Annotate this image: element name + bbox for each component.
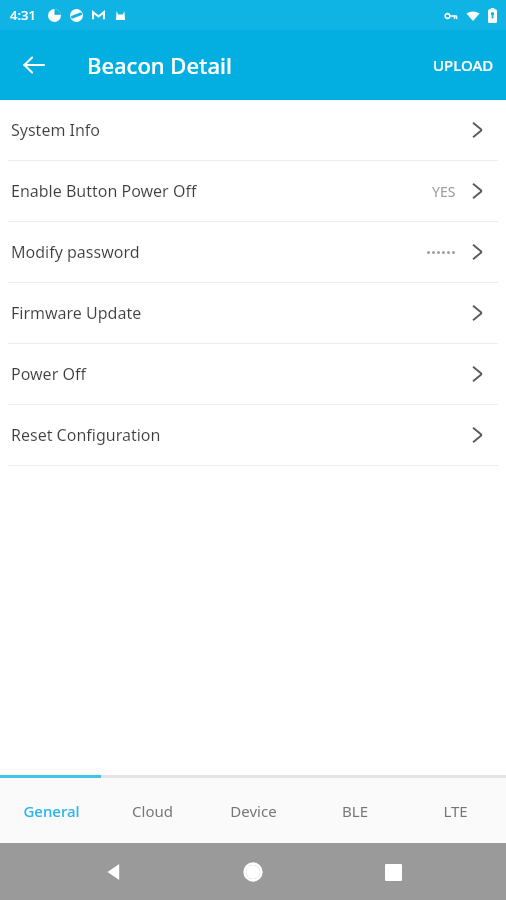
staticText: Enable Button Power Off	[11, 180, 197, 202]
staticText: YES	[432, 182, 456, 201]
staticText: Reset Configuration	[11, 424, 161, 446]
button[interactable]: Reset Configuration	[0, 405, 506, 465]
staticText: 4:31	[10, 6, 36, 24]
staticText: System Info	[11, 119, 101, 141]
button[interactable]: Device	[203, 778, 304, 843]
button[interactable]: Firmware Update	[0, 283, 506, 343]
button[interactable]: System Info	[0, 100, 506, 160]
staticText: Power Off	[11, 363, 86, 385]
button[interactable]: UPLOAD	[421, 45, 506, 85]
button[interactable]: BLE	[304, 778, 405, 843]
staticText: Cloud	[132, 801, 173, 821]
button[interactable]: LTE	[405, 778, 506, 843]
staticText: BLE	[342, 801, 368, 821]
button[interactable]: Recent apps	[366, 845, 420, 899]
staticText: Beacon Detail	[87, 50, 232, 80]
button[interactable]: General	[0, 778, 102, 843]
button[interactable]: Back	[86, 845, 140, 899]
staticText: Device	[230, 801, 277, 821]
staticText: Modify password	[11, 241, 140, 263]
button[interactable]: Enable Button Power Off	[0, 161, 506, 221]
staticText: UPLOAD	[433, 55, 494, 75]
button[interactable]: Home	[226, 845, 280, 899]
button[interactable]: Modify password	[0, 222, 506, 282]
staticText: General	[23, 801, 80, 821]
button[interactable]: Back	[10, 41, 58, 89]
button[interactable]: Power Off	[0, 344, 506, 404]
staticText: Firmware Update	[11, 302, 142, 324]
button[interactable]: Cloud	[102, 778, 203, 843]
staticText: LTE	[443, 801, 468, 821]
